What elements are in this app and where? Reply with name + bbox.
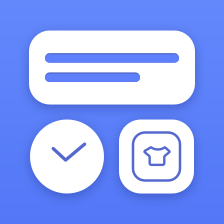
button[interactable]: Wardrobe <box>119 119 194 193</box>
button[interactable]: Notes <box>29 30 195 104</box>
button[interactable]: Done <box>30 119 104 193</box>
